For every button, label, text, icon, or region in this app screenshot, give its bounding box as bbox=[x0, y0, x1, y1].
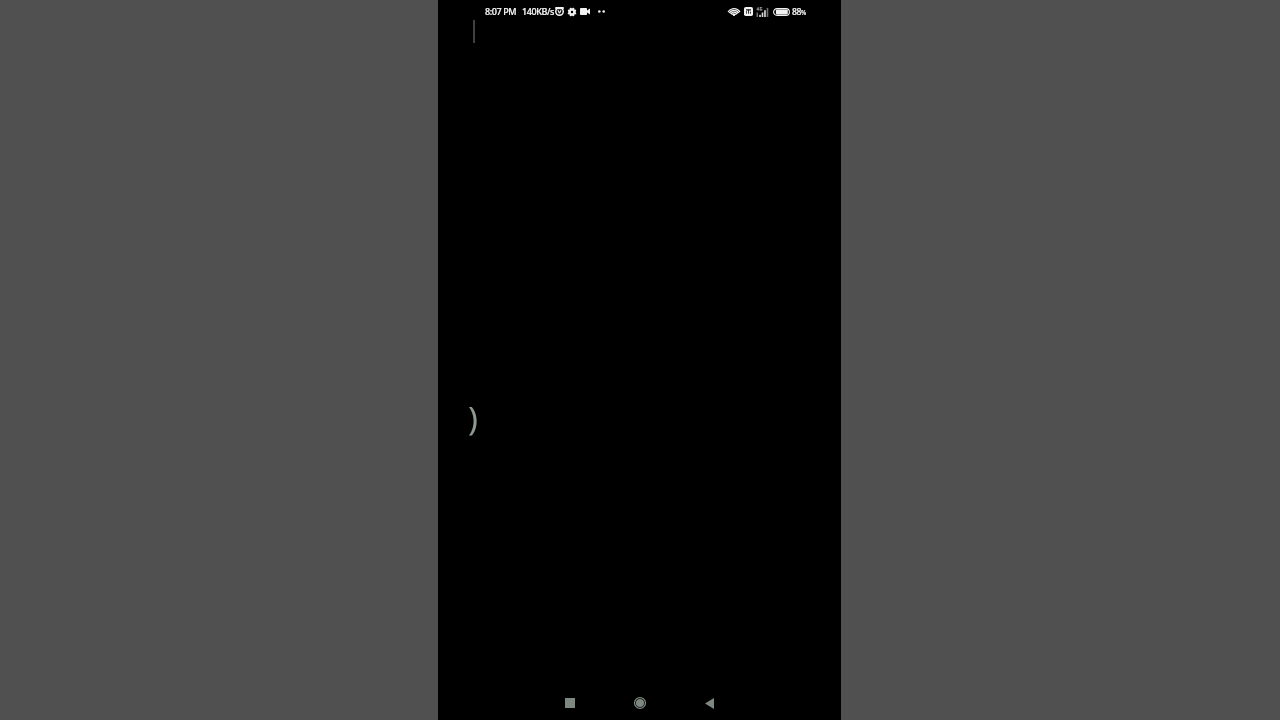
staticText: ) bbox=[468, 396, 478, 441]
button[interactable]: Back bbox=[686, 680, 732, 720]
staticText: 8:07 PM bbox=[485, 5, 517, 17]
staticText: % bbox=[801, 8, 807, 16]
staticText: 88 bbox=[792, 6, 802, 18]
other: Status bar bbox=[438, 0, 841, 720]
button[interactable]: Recent apps bbox=[547, 680, 593, 720]
staticText: 140KB/s bbox=[522, 5, 555, 17]
button[interactable]: Home bbox=[617, 680, 663, 720]
